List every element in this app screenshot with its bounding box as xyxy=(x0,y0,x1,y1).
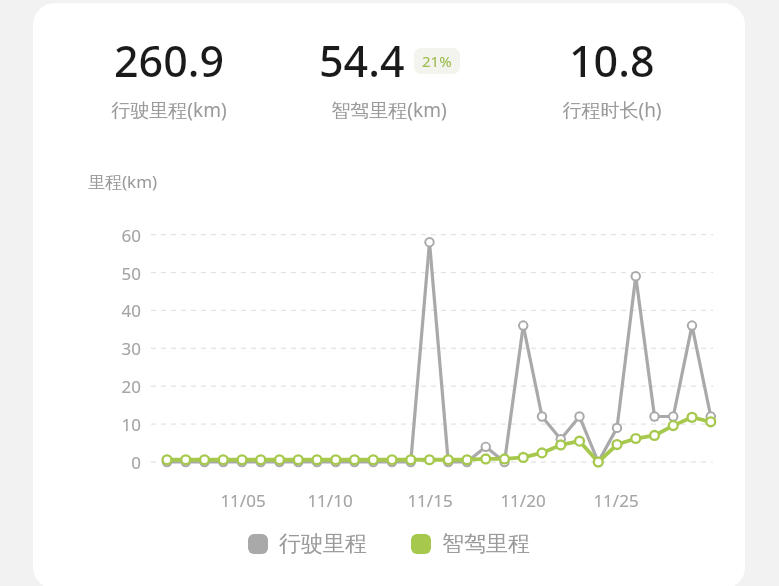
staticText: 11/05 xyxy=(210,489,276,512)
staticText: 智驾里程(km) xyxy=(331,97,447,123)
staticText: 54.4 xyxy=(319,31,405,90)
staticText: 智驾里程 xyxy=(442,530,530,558)
button[interactable]: 260.9 xyxy=(64,31,274,123)
button[interactable]: 10.8 xyxy=(507,31,717,123)
staticText: 11/25 xyxy=(583,489,649,512)
staticText: 11/15 xyxy=(397,489,463,512)
staticText: 行驶里程 xyxy=(279,530,367,558)
staticText: 里程(km) xyxy=(88,170,158,193)
staticText: 行程时长(h) xyxy=(562,97,662,123)
staticText: 11/20 xyxy=(490,489,556,512)
staticText: 10 xyxy=(99,413,141,436)
staticText: 30 xyxy=(99,337,141,360)
staticText: 行驶里程(km) xyxy=(111,97,227,123)
staticText: 0 xyxy=(99,451,141,474)
staticText: 20 xyxy=(99,375,141,398)
staticText: 60 xyxy=(99,224,141,247)
button[interactable]: 智驾里程 xyxy=(411,530,530,558)
staticText: 260.9 xyxy=(114,31,225,90)
button[interactable]: 行驶里程 xyxy=(248,530,367,558)
staticText: 21% xyxy=(422,51,452,71)
staticText: 10.8 xyxy=(569,31,655,90)
button[interactable]: 54.4 xyxy=(284,31,494,123)
staticText: 50 xyxy=(99,262,141,285)
staticText: 40 xyxy=(99,299,141,322)
staticText: 11/10 xyxy=(297,489,363,512)
